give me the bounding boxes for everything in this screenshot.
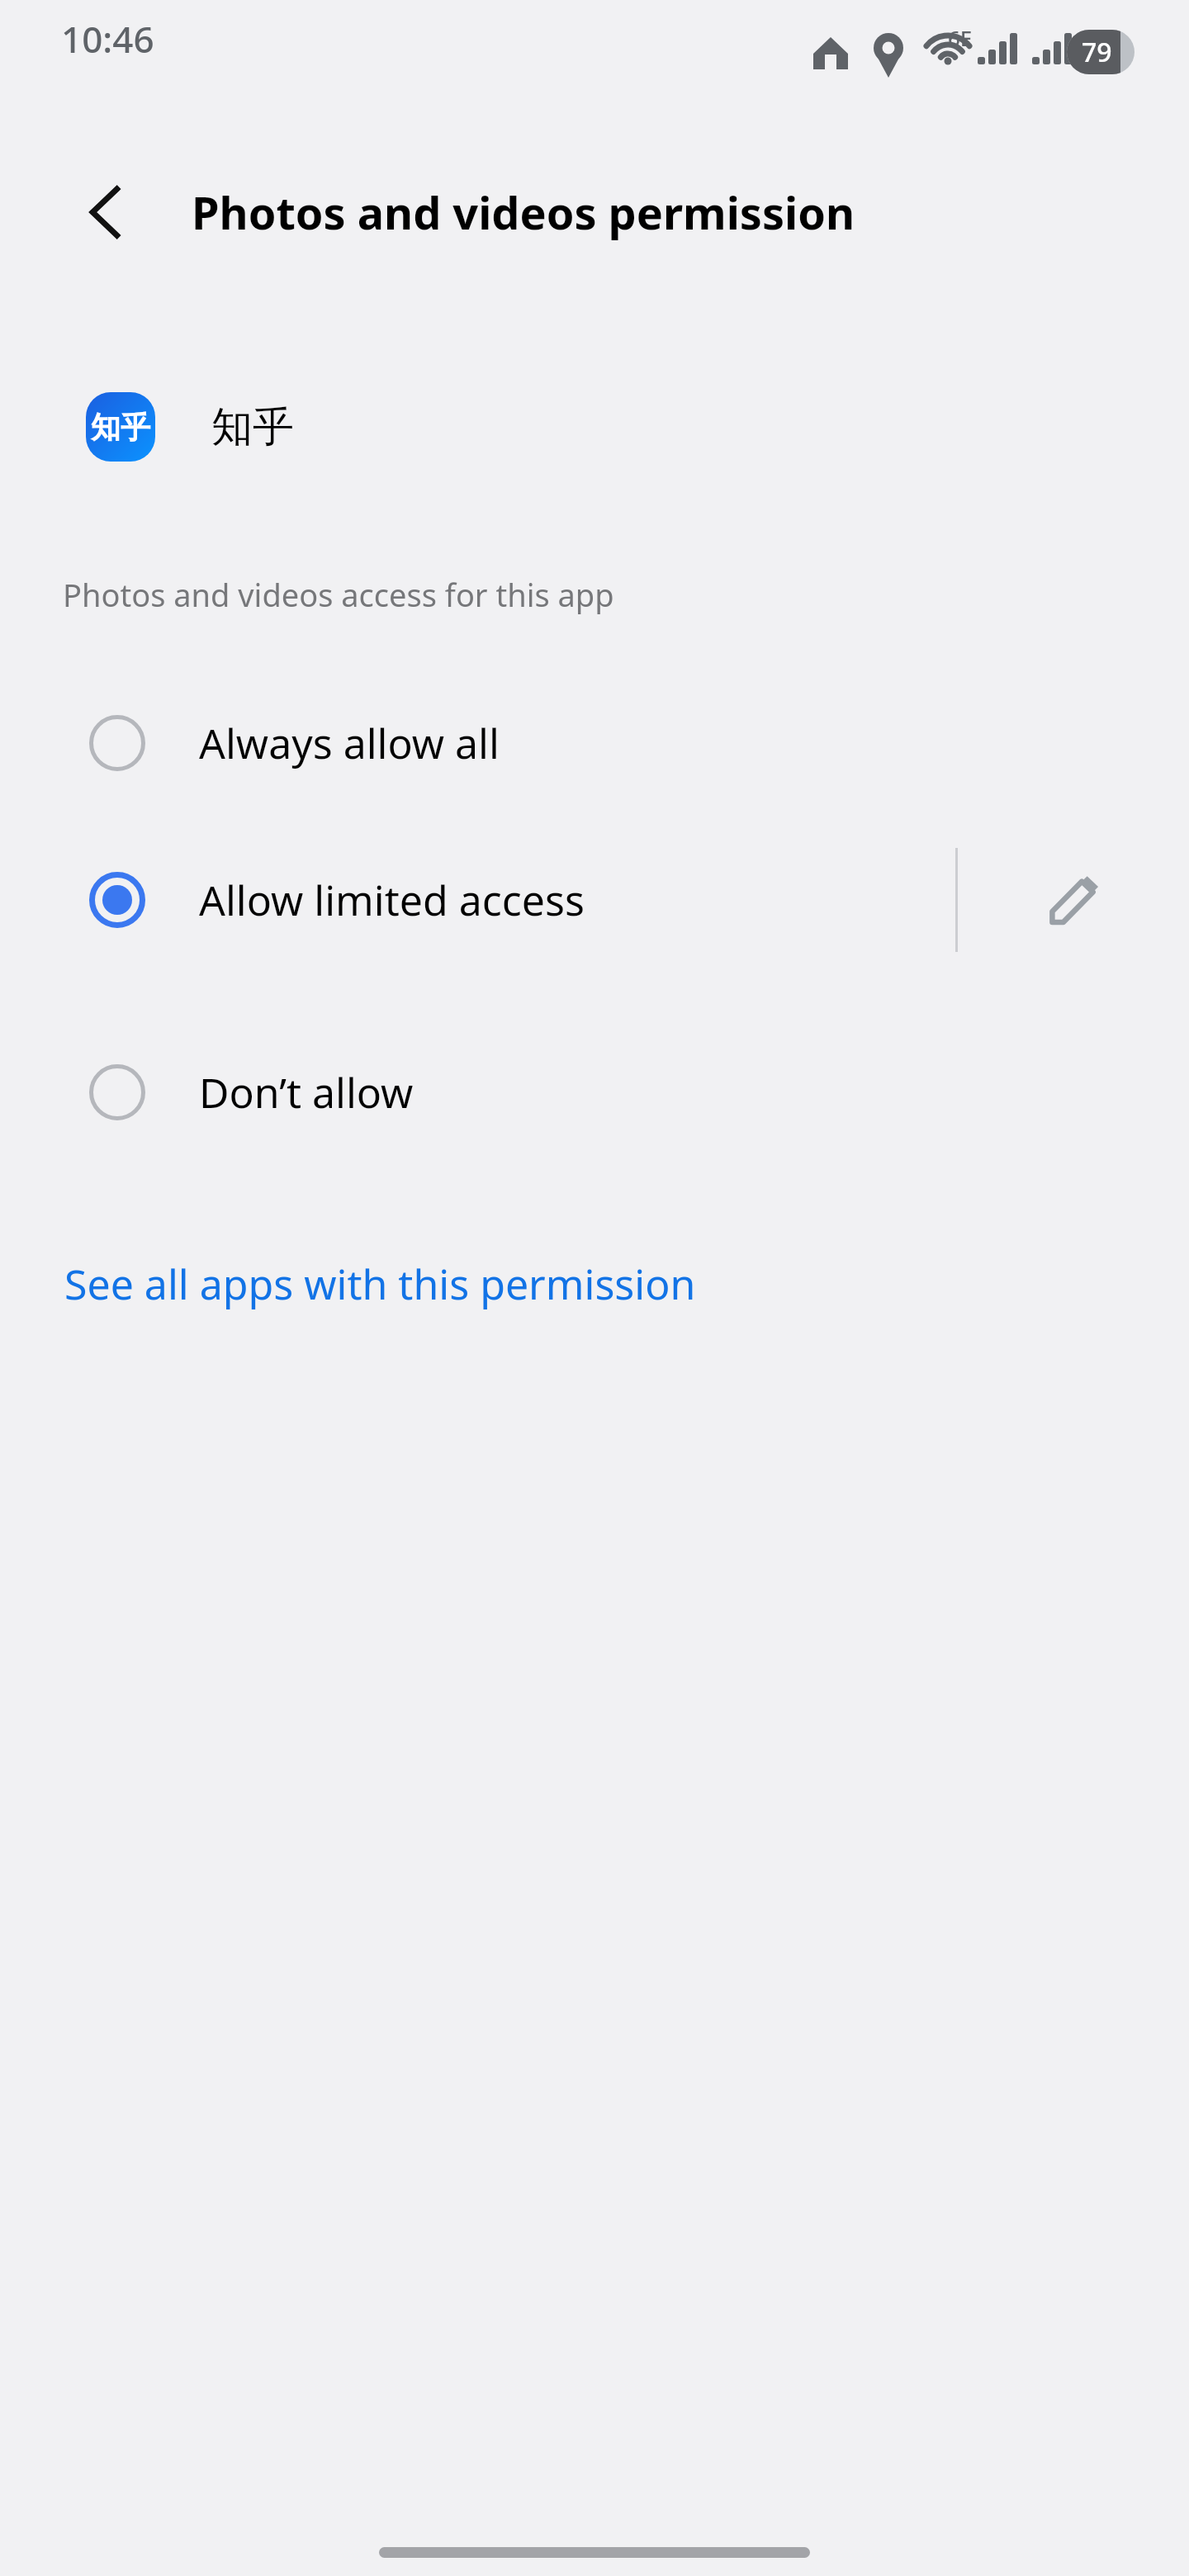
staticText: 知乎 xyxy=(211,401,294,453)
button[interactable]: Allow limited access xyxy=(0,838,956,962)
staticText: 10:46 xyxy=(61,14,154,64)
staticText: Allow limited access xyxy=(199,872,585,928)
button[interactable]: 知乎 xyxy=(0,378,1189,476)
button[interactable]: Edit selected photos xyxy=(1016,838,1131,962)
button[interactable]: Back xyxy=(56,162,157,263)
staticText: Photos and videos permission xyxy=(192,182,855,243)
button[interactable]: Always allow all xyxy=(0,681,1189,805)
staticText: Don’t allow xyxy=(199,1064,414,1120)
staticText: See all apps with this permission xyxy=(64,1256,696,1312)
staticText: 79 xyxy=(1082,34,1112,70)
staticText: Photos and videos access for this app xyxy=(63,573,614,616)
staticText: 知乎 xyxy=(91,409,150,446)
button[interactable]: See all apps with this permission xyxy=(0,1235,1189,1333)
staticText: 6E xyxy=(948,23,973,52)
staticText: Always allow all xyxy=(199,715,500,771)
button[interactable]: Don’t allow xyxy=(0,1030,1189,1154)
